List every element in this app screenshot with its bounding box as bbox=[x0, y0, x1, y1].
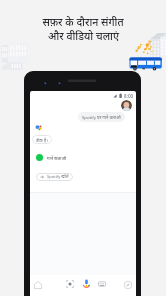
button[interactable]: Google Lens bbox=[62, 276, 78, 291]
staticText: Spotify खोलें bbox=[47, 174, 69, 180]
button[interactable]: Keyboard bbox=[94, 276, 110, 291]
staticText: 8:00 bbox=[124, 93, 134, 99]
button[interactable]: Home bbox=[32, 279, 44, 291]
staticText: ठीक है। bbox=[36, 137, 48, 143]
button[interactable]: Voice search bbox=[78, 276, 94, 291]
staticText: Spotify पर गाने चलाओ bbox=[82, 114, 121, 120]
button[interactable]: Account bbox=[121, 100, 132, 111]
staticText: और वीडियो चलाएं bbox=[48, 29, 119, 43]
staticText: गाने बजाओ bbox=[47, 155, 67, 161]
button[interactable]: Explore bbox=[122, 279, 134, 291]
staticText: सफ़र के दौरान संगीत bbox=[42, 15, 124, 29]
button[interactable]: Spotify खोलें bbox=[36, 173, 73, 181]
